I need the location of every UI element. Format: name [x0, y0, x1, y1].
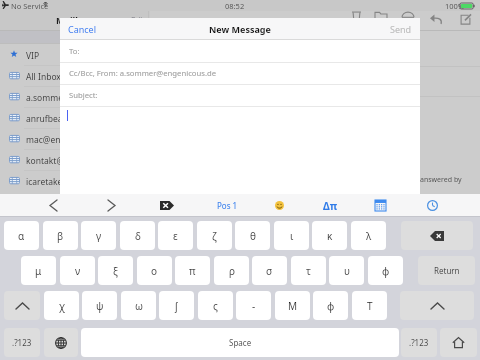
staticText: ι — [290, 229, 294, 243]
staticText: ʃ — [175, 299, 178, 313]
staticText: To: — [69, 46, 80, 56]
staticText: Return — [434, 265, 460, 276]
button[interactable]: Μ — [275, 291, 310, 320]
button[interactable]: shift — [400, 291, 474, 320]
staticText: Send — [390, 23, 412, 35]
staticText: 100% — [445, 1, 465, 11]
staticText: α — [18, 229, 25, 243]
button[interactable]: VIP — [0, 44, 60, 65]
button[interactable]: Cancel — [63, 19, 102, 39]
button[interactable]: Compose — [457, 11, 473, 27]
button[interactable]: Calendar — [371, 194, 389, 217]
button[interactable]: ς — [198, 291, 233, 320]
button[interactable]: icaretaker@m — [0, 170, 60, 191]
button[interactable]: kontakt@eng — [0, 149, 60, 170]
staticText: All Inboxes — [26, 71, 60, 83]
button[interactable]: ο — [137, 256, 172, 285]
button[interactable]: χ — [44, 291, 79, 320]
button[interactable]: δ — [120, 221, 155, 250]
staticText: μ — [35, 264, 42, 278]
button[interactable]: γ — [81, 221, 116, 250]
button[interactable]: Previous — [44, 194, 62, 217]
staticText: answered by — [420, 175, 462, 185]
staticText: Δπ — [323, 199, 338, 213]
staticText: ε — [173, 229, 178, 243]
staticText: Subject: — [69, 90, 98, 100]
button[interactable]: anrufbeantwo — [0, 107, 60, 128]
button[interactable]: ε — [158, 221, 193, 250]
button[interactable]: dismiss — [440, 328, 477, 357]
button[interactable]: φ — [368, 256, 403, 285]
button[interactable]: ι — [274, 221, 309, 250]
staticText: mac@engenic — [26, 134, 60, 146]
button[interactable]: a.sommer@ — [0, 86, 60, 107]
button[interactable]: α — [4, 221, 39, 250]
button[interactable]: .?123 — [4, 328, 40, 357]
staticText: δ — [135, 229, 141, 243]
button[interactable]: Cc/Bcc, From: a.sommer@engenicous.de — [60, 62, 420, 84]
staticText: icaretaker@m — [26, 176, 60, 188]
button[interactable]: Pos 1 — [214, 194, 241, 217]
staticText: φ — [382, 264, 390, 278]
button[interactable]: π — [175, 256, 210, 285]
staticText: anrufbeantwo — [26, 113, 60, 125]
button[interactable]: λ — [351, 221, 386, 250]
button[interactable]: - — [236, 291, 271, 320]
button[interactable]: Subject: — [60, 84, 420, 106]
button[interactable]: Space — [81, 328, 399, 357]
button[interactable]: σ — [252, 256, 287, 285]
staticText: 08:52 — [225, 1, 245, 11]
staticText: ψ — [96, 299, 104, 313]
staticText: - — [252, 299, 256, 313]
button[interactable]: θ — [235, 221, 270, 250]
button[interactable]: Edit — [126, 11, 150, 30]
button[interactable]: Next — [102, 194, 120, 217]
staticText: χ — [59, 299, 65, 313]
staticText: VIP — [26, 50, 40, 62]
button[interactable]: φ — [313, 291, 348, 320]
button[interactable]: ʃ — [159, 291, 194, 320]
staticText: ξ — [113, 264, 118, 278]
staticText: .?123 — [12, 337, 32, 348]
button[interactable]: β — [43, 221, 78, 250]
button[interactable]: μ — [21, 256, 56, 285]
button[interactable]: Return — [418, 256, 475, 285]
staticText: Space — [229, 337, 252, 348]
button[interactable]: Δπ — [320, 194, 340, 217]
staticText: No Service — [11, 1, 49, 11]
button[interactable]: τ — [291, 256, 326, 285]
button[interactable]: To: — [60, 40, 420, 62]
button[interactable]: globe — [44, 328, 78, 357]
button[interactable]: ζ — [197, 221, 232, 250]
staticText: Cc/Bcc, From: a.sommer@engenicous.de — [69, 68, 217, 78]
staticText: ς — [213, 299, 218, 313]
button[interactable]: All Inboxes — [0, 65, 60, 86]
button[interactable]: Emoji — [270, 194, 288, 217]
staticText: λ — [366, 229, 372, 243]
staticText: Edit — [131, 15, 146, 26]
button[interactable]: ρ — [214, 256, 249, 285]
button[interactable]: κ — [312, 221, 347, 250]
staticText: ρ — [229, 264, 235, 278]
staticText: σ — [266, 264, 273, 278]
button[interactable]: ν — [60, 256, 95, 285]
staticText: Cancel — [68, 23, 97, 35]
button[interactable]: Τ — [352, 291, 387, 320]
button[interactable]: backspace — [401, 221, 473, 250]
button[interactable]: shift — [4, 291, 40, 320]
button[interactable]: .?123 — [401, 328, 437, 357]
button[interactable]: Delete — [158, 194, 176, 217]
button[interactable]: Reply — [427, 11, 445, 27]
button[interactable]: Send — [385, 19, 417, 39]
button[interactable]: mac@engenic — [0, 128, 60, 149]
button[interactable]: ω — [121, 291, 156, 320]
button[interactable]: ξ — [98, 256, 133, 285]
staticText: θ — [250, 229, 256, 243]
staticText: .?123 — [409, 337, 429, 348]
staticText: β — [57, 229, 64, 243]
button[interactable]: υ — [329, 256, 364, 285]
button[interactable]: ψ — [82, 291, 117, 320]
button[interactable]: Clock — [423, 194, 441, 217]
staticText: γ — [96, 229, 102, 243]
staticText: Τ — [367, 299, 373, 313]
